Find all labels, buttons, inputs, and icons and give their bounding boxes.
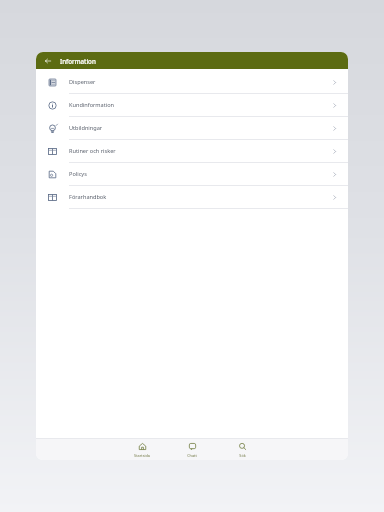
button[interactable]: Sök: [217, 442, 267, 458]
staticText: Rutiner och risker: [69, 147, 116, 155]
staticText: Förarhandbok: [69, 193, 107, 201]
button[interactable]: Chatt: [167, 442, 217, 458]
staticText: Utbildningar: [69, 124, 103, 132]
staticText: Startsida: [134, 453, 150, 458]
staticText: Sök: [239, 453, 246, 458]
button[interactable]: Rutiner och risker: [36, 140, 348, 163]
button[interactable]: Kundinformation: [36, 94, 348, 117]
button[interactable]: Förarhandbok: [36, 186, 348, 209]
staticText: Chatt: [187, 453, 197, 458]
button[interactable]: Startsida: [117, 442, 167, 458]
button[interactable]: Policys: [36, 163, 348, 186]
button[interactable]: Dispenser: [36, 71, 348, 94]
staticText: Dispenser: [69, 78, 96, 86]
staticText: Policys: [69, 170, 87, 178]
button[interactable]: Back: [43, 56, 53, 66]
button[interactable]: Utbildningar: [36, 117, 348, 140]
staticText: Kundinformation: [69, 101, 115, 109]
staticText: Information: [60, 57, 96, 65]
